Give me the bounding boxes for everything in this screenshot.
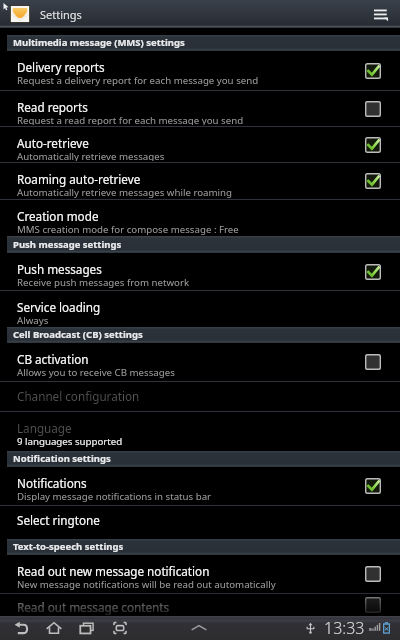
button[interactable]: Creation mode [0,200,400,236]
staticText: Service loading [17,299,101,315]
staticText: Roaming auto-retrieve [17,171,141,187]
button[interactable]: Recent apps [70,616,103,640]
staticText: Receive push messages from network [17,276,190,289]
staticText: Push messages [17,261,102,277]
staticText: Select ringtone [17,512,100,528]
button[interactable]: Read out message contents [0,594,400,616]
button[interactable]: Delivery reports [0,51,400,91]
button[interactable]: Back [4,616,37,640]
staticText: Request a delivery report for each messa… [17,74,259,87]
staticText: Auto-retrieve [17,135,89,151]
staticText: Language [17,420,72,436]
button[interactable]: Notifications [0,467,400,506]
staticText: Automatically retrieve messages while ro… [17,186,233,198]
staticText: Creation mode [17,208,99,224]
staticText: Allows you to receive CB messages [17,366,175,379]
staticText: Notification settings [13,452,111,465]
staticText: CB activation [17,351,89,367]
staticText: Settings [40,7,82,22]
staticText: 13:33 [324,617,365,639]
button[interactable]: Service loading [0,291,400,327]
button[interactable]: More options [368,1,394,27]
button[interactable]: Push messages [0,253,400,291]
button[interactable]: Read out new message notification [0,555,400,594]
button[interactable]: Auto-retrieve [0,127,400,163]
staticText: Notifications [17,475,87,491]
staticText: New message notifications will be read o… [17,578,276,591]
button[interactable]: Language [0,412,400,451]
button[interactable]: Expand [187,616,211,640]
button[interactable]: Home [37,616,70,640]
staticText: Request a read report for each message y… [17,114,244,125]
button[interactable]: CB activation [0,343,400,382]
staticText: MMS creation mode for compose message : … [17,223,239,235]
staticText: Read out message contents [17,599,170,615]
button[interactable]: Select ringtone [0,506,400,539]
button[interactable]: Channel configuration [0,382,400,412]
staticText: Read reports [17,99,88,115]
staticText: Push message settings [13,238,122,251]
staticText: Cell Broadcast (CB) settings [13,328,143,341]
staticText: Read out new message notification [17,563,210,579]
button[interactable]: Read reports [0,91,400,127]
staticText: 9 languages supported [17,435,123,448]
staticText: Display message notifications in status … [17,490,212,503]
staticText: Text-to-speech settings [13,540,124,553]
button[interactable]: Roaming auto-retrieve [0,163,400,200]
staticText: Delivery reports [17,59,105,75]
staticText: Multimedia message (MMS) settings [13,36,185,49]
button[interactable]: Screenshot [103,616,136,640]
staticText: Automatically retrieve messages [17,150,165,161]
staticText: Always [17,314,49,326]
staticText: Channel configuration [17,388,140,404]
